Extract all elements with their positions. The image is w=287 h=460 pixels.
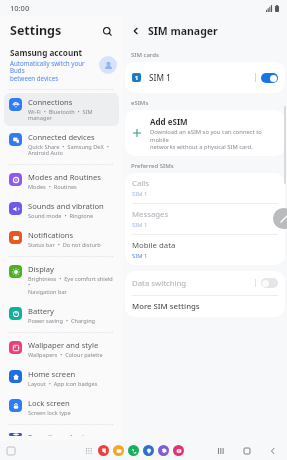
staticText: Display (28, 264, 54, 274)
button[interactable]: Gallery (173, 445, 184, 456)
staticText: Messages (132, 209, 169, 220)
button[interactable]: Calls (125, 173, 285, 203)
staticText: SIM manager (148, 24, 218, 38)
staticText: SIM cards (131, 51, 159, 59)
staticText: 10:00 (10, 3, 30, 13)
button[interactable]: More SIM settings (125, 296, 285, 317)
staticText: More SIM settings (132, 301, 200, 312)
button[interactable]: Search (97, 21, 117, 41)
button[interactable]: Back (127, 22, 145, 40)
staticText: Data switching (132, 278, 255, 289)
staticText: 1 (135, 74, 139, 81)
staticText: Mobile data (132, 240, 176, 251)
staticText: Automatically switch your Buds between d… (10, 59, 99, 83)
staticText: Modes and Routines (28, 172, 101, 182)
button[interactable]: Mobile data (125, 235, 285, 265)
button[interactable]: Messages (143, 445, 154, 456)
staticText: Sound mode • Ringtone (28, 212, 94, 220)
button[interactable]: Notifications (4, 226, 119, 253)
staticText: SIM 1 (149, 72, 255, 83)
staticText: Notifications (28, 230, 74, 240)
button[interactable]: Messages (125, 204, 285, 234)
button[interactable]: Wallpaper and style (4, 336, 119, 363)
button[interactable]: Apps (83, 445, 94, 456)
staticText: Power saving • Charging (28, 317, 96, 325)
button[interactable]: Back (267, 445, 278, 456)
button[interactable]: Recents (215, 445, 226, 456)
button[interactable]: Edit (273, 208, 287, 229)
button[interactable]: Data switching (125, 271, 285, 295)
staticText: Home screen (28, 369, 76, 379)
staticText: Quick Share • Samsung DeX • Android Auto (28, 143, 109, 157)
button[interactable]: Modes and Routines (4, 168, 119, 195)
staticText: Battery (28, 306, 54, 316)
staticText: Wi-Fi • Bluetooth • SIM manager (28, 108, 115, 122)
staticText: Wallpaper and style (28, 340, 99, 350)
staticText: Screen lock type (28, 409, 71, 417)
button[interactable]: Security and privacy (4, 428, 119, 440)
button[interactable]: My Files (113, 445, 124, 456)
button[interactable]: Battery (4, 302, 119, 329)
staticText: Modes • Routines (28, 183, 77, 191)
staticText: Preferred SIMs (131, 162, 174, 170)
staticText: Add eSIM (150, 116, 188, 127)
staticText: Sounds and vibration (28, 201, 104, 211)
staticText: Layout • App icon badges (28, 380, 98, 388)
staticText: SIM 1 (132, 252, 148, 260)
button[interactable]: Internet (158, 445, 169, 456)
staticText: Calls (132, 178, 150, 189)
button[interactable]: Recent app (5, 445, 17, 457)
staticText: Wallpapers • Colour palette (28, 351, 103, 359)
button[interactable]: Connected devices (4, 128, 119, 161)
button[interactable]: Samsung account (10, 47, 117, 83)
button[interactable]: Phone (128, 445, 139, 456)
staticText: SIM 1 (132, 190, 148, 198)
staticText: Download an eSIM so you can connect to m… (150, 128, 278, 150)
staticText: Security and privacy (28, 432, 100, 436)
button[interactable]: Display (4, 260, 119, 300)
staticText: SIM 1 (132, 221, 148, 229)
button[interactable]: Lock screen (4, 394, 119, 421)
staticText: Lock screen (28, 398, 70, 408)
button[interactable]: Add eSIM (125, 110, 285, 156)
button[interactable]: Office (98, 445, 109, 456)
staticText: Brightness • Eye comfort shield • Naviga… (28, 275, 115, 296)
staticText: Samsung account (10, 47, 83, 58)
staticText: Connections (28, 97, 73, 107)
button[interactable]: Sounds and vibration (4, 197, 119, 224)
button[interactable]: 1 (125, 62, 285, 93)
button[interactable]: On (261, 73, 278, 83)
staticText: eSIMs (131, 99, 149, 107)
button[interactable]: Home (241, 445, 252, 456)
staticText: Settings (10, 22, 62, 39)
button[interactable]: Connections (4, 93, 119, 126)
staticText: Status bar • Do not disturb (28, 241, 101, 249)
button[interactable]: Home screen (4, 365, 119, 392)
staticText: Connected devices (28, 132, 95, 142)
button[interactable]: Off (261, 278, 278, 288)
